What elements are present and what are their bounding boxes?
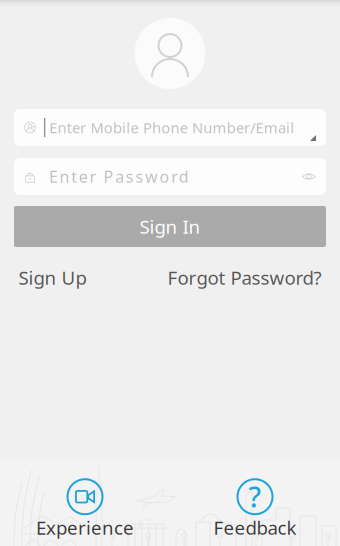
staticText: Enter Password bbox=[49, 166, 189, 187]
button[interactable]: ? bbox=[213, 479, 296, 540]
staticText: Feedback bbox=[213, 515, 296, 540]
staticText: Sign In bbox=[139, 214, 200, 239]
staticText: Forgot Password? bbox=[167, 265, 321, 290]
staticText: Experience bbox=[36, 515, 134, 540]
button[interactable]: Sign In bbox=[14, 206, 326, 247]
button[interactable]: Forgot Password? bbox=[167, 265, 321, 290]
staticText: ? bbox=[248, 478, 261, 515]
button[interactable]: Experience bbox=[36, 479, 134, 540]
staticText: Sign Up bbox=[18, 265, 86, 290]
button[interactable]: Sign Up bbox=[18, 265, 86, 290]
staticText: Enter Mobile Phone Number/Email bbox=[49, 118, 294, 137]
